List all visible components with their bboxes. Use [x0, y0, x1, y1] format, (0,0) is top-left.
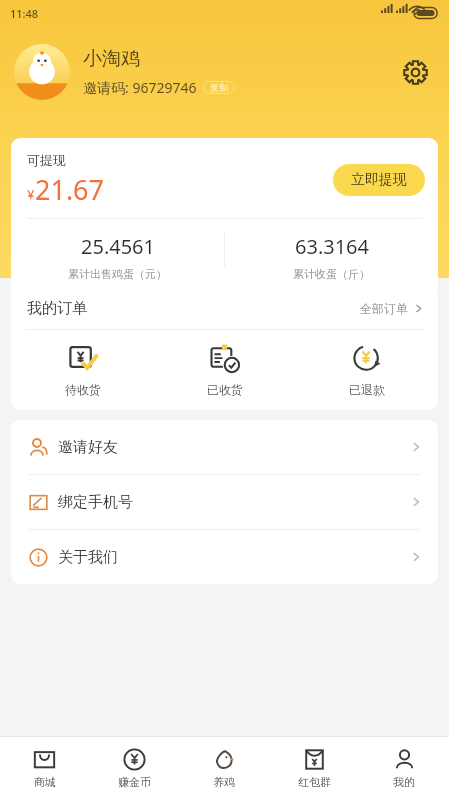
staticText: 已退款	[349, 382, 385, 397]
button[interactable]: 邀请好友	[11, 420, 438, 474]
button[interactable]: 红包群	[269, 748, 359, 789]
staticText: 累计收蛋（斤）	[293, 267, 370, 281]
staticText: 邀请码: 96729746	[83, 78, 197, 97]
staticText: 11:48	[10, 6, 39, 21]
button[interactable]: 我的订单	[11, 286, 438, 329]
staticText: 可提现	[27, 152, 66, 168]
staticText: 25.4561	[81, 233, 155, 260]
button[interactable]: 绑定手机号	[11, 475, 438, 529]
staticText: 63.3164	[295, 233, 369, 260]
staticText: 赚金币	[118, 775, 151, 789]
staticText: 绑定手机号	[58, 493, 133, 512]
staticText: 小淘鸡	[83, 47, 140, 71]
staticText: 累计出售鸡蛋（元）	[68, 267, 167, 281]
staticText: 商城	[34, 775, 56, 789]
button[interactable]: 复制	[203, 81, 235, 94]
button[interactable]: Settings	[395, 52, 435, 92]
button[interactable]: 我的	[359, 748, 449, 789]
button[interactable]: 立即提现	[333, 164, 425, 196]
staticText: 红包群	[298, 775, 331, 789]
staticText: 我的订单	[27, 299, 87, 318]
button[interactable]: 赚金币	[89, 748, 179, 789]
staticText: 养鸡	[213, 775, 235, 789]
staticText: 21.67	[35, 171, 105, 208]
button[interactable]: 已退款	[296, 344, 438, 397]
staticText: 全部订单	[360, 301, 408, 316]
staticText: 关于我们	[58, 548, 118, 567]
button[interactable]: 商城	[0, 748, 89, 789]
staticText: 已收货	[207, 382, 243, 397]
button[interactable]: 关于我们	[11, 530, 438, 584]
staticText: 立即提现	[351, 171, 407, 189]
button[interactable]: 待收货	[11, 344, 154, 397]
staticText: ¥	[27, 185, 35, 203]
staticText: 复制	[210, 82, 228, 93]
button[interactable]: 养鸡	[179, 748, 269, 789]
staticText: 待收货	[65, 382, 101, 397]
staticText: 我的	[393, 775, 415, 789]
button[interactable]: 已收货	[154, 344, 296, 397]
staticText: 邀请好友	[58, 438, 118, 457]
